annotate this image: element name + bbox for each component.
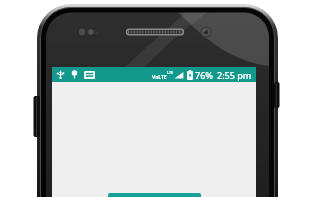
staticText: 76% [195, 69, 213, 81]
other: USB connected [56, 70, 65, 79]
other: Battery 76 percent charging [187, 70, 193, 80]
other: Location on [70, 70, 79, 79]
other: Signal strength [174, 71, 184, 80]
staticText: LTE [167, 70, 173, 75]
staticText: VoLTE [152, 74, 167, 81]
staticText: 2:55 pm [217, 69, 252, 81]
other: Screenshot captured [84, 71, 95, 79]
button[interactable] [108, 193, 201, 197]
